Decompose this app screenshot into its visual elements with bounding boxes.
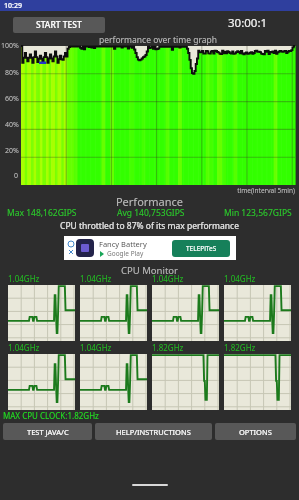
- staticText: 1.04GHz: [152, 273, 184, 284]
- button[interactable]: HELP/INSTRUCTIONS: [95, 423, 212, 440]
- staticText: performance over time graph: [21, 34, 295, 46]
- staticText: 1.04GHz: [80, 273, 112, 284]
- staticText: 10:29: [4, 1, 22, 11]
- button[interactable]: TEST JAVA/C: [3, 423, 92, 440]
- staticText: Fancy Battery: [99, 239, 147, 249]
- staticText: time(interval 5min): [0, 186, 295, 195]
- staticText: 30:00:1: [228, 15, 268, 31]
- staticText: 40%: [5, 120, 19, 130]
- staticText: TELEPiTeS: [186, 244, 217, 253]
- staticText: Avg 140,753GIPS: [117, 207, 185, 219]
- button[interactable]: TELEPiTeS: [172, 240, 230, 257]
- button[interactable]: OPTIONS: [215, 423, 296, 440]
- staticText: 0: [14, 171, 19, 181]
- staticText: START TEST: [36, 19, 82, 31]
- staticText: Max 148,162GIPS: [7, 207, 77, 219]
- staticText: Min 123,567GIPS: [224, 207, 292, 219]
- staticText: 20%: [5, 146, 19, 156]
- button[interactable]: Fancy Battery: [64, 236, 236, 260]
- staticText: 60%: [5, 94, 19, 104]
- staticText: CPU throttled to 87% of its max performa…: [0, 220, 299, 232]
- staticText: Performance: [0, 194, 299, 209]
- staticText: 1.04GHz: [80, 342, 112, 353]
- staticText: 1.04GHz: [8, 273, 40, 284]
- staticText: HELP/INSTRUCTIONS: [116, 427, 191, 437]
- staticText: OPTIONS: [239, 427, 272, 437]
- staticText: 1.04GHz: [8, 342, 40, 353]
- staticText: CPU Monitor: [0, 264, 299, 277]
- button[interactable]: START TEST: [13, 17, 105, 33]
- staticText: 1.82GHz: [224, 342, 256, 353]
- staticText: TEST JAVA/C: [27, 427, 69, 437]
- staticText: 1.04GHz: [224, 273, 256, 284]
- staticText: 80%: [5, 68, 19, 78]
- staticText: Google Play: [107, 249, 144, 258]
- staticText: 100%: [1, 41, 19, 51]
- staticText: 1.82GHz: [152, 342, 184, 353]
- staticText: MAX CPU CLOCK:1.82GHz: [3, 410, 99, 421]
